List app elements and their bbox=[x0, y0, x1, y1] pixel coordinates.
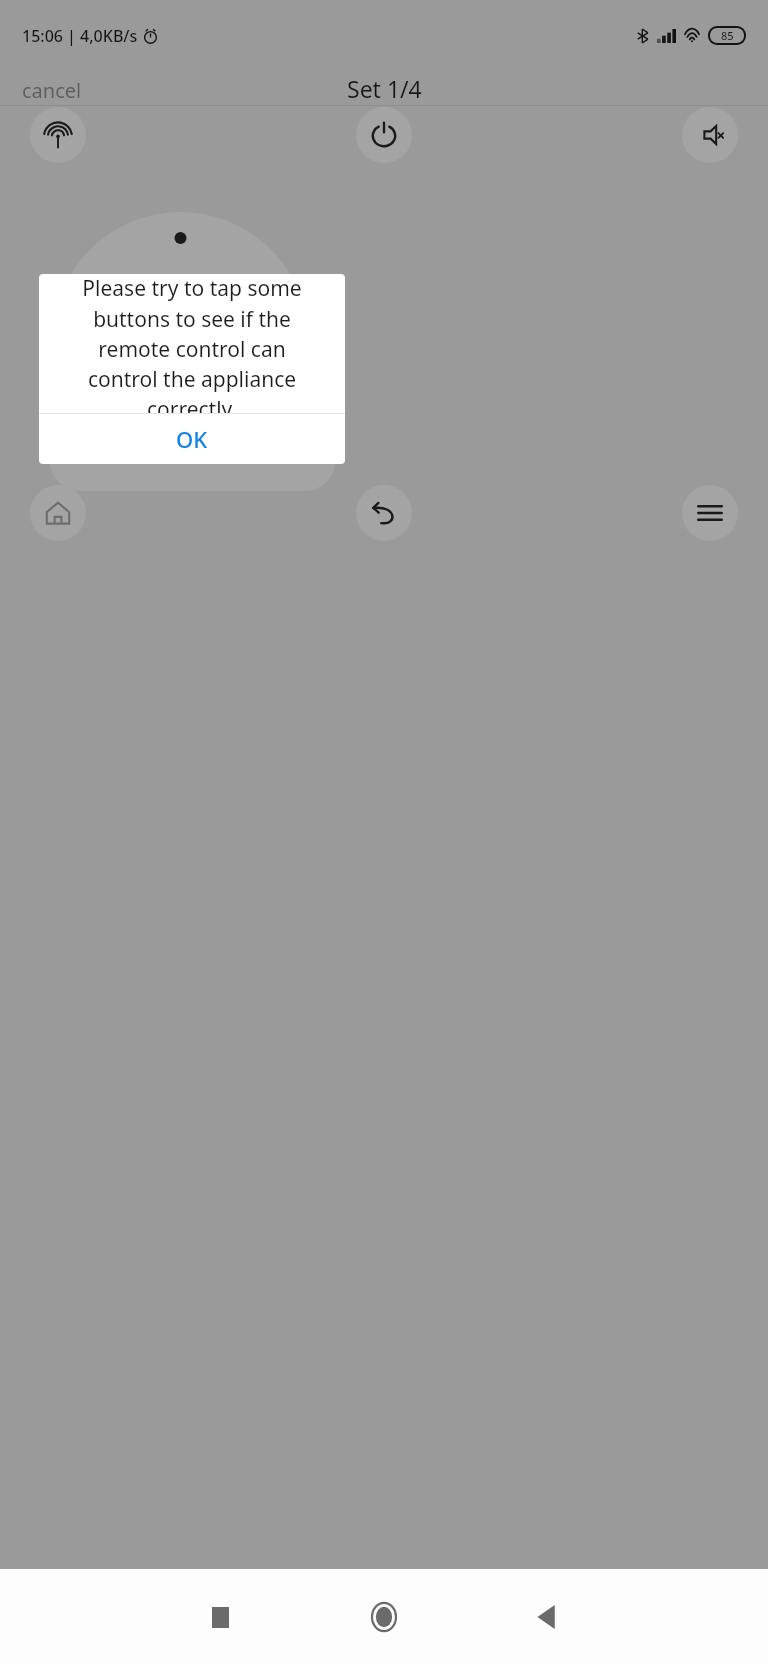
button[interactable]: Menu bbox=[682, 485, 738, 541]
button[interactable]: Home bbox=[360, 1593, 408, 1641]
staticText: 85 bbox=[721, 28, 734, 43]
button[interactable]: Mute bbox=[682, 107, 738, 163]
staticText: Set 1/4 bbox=[347, 73, 422, 104]
button[interactable]: Back bbox=[356, 485, 412, 541]
button[interactable]: Learn bbox=[30, 107, 86, 163]
button[interactable]: Back bbox=[524, 1593, 572, 1641]
button[interactable]: Power bbox=[356, 107, 412, 163]
button[interactable]: OK bbox=[39, 414, 345, 464]
staticText: cancel bbox=[22, 77, 82, 100]
staticText: OK bbox=[176, 424, 208, 454]
button[interactable]: cancel bbox=[16, 71, 88, 106]
button[interactable]: Direction pad bbox=[53, 212, 308, 467]
button[interactable]: Recent apps bbox=[196, 1593, 244, 1641]
staticText: 15:06 | 4,0KB/s bbox=[22, 25, 138, 47]
button[interactable]: Home bbox=[30, 485, 86, 541]
staticText: Please try to tap some buttons to see if… bbox=[63, 274, 321, 413]
